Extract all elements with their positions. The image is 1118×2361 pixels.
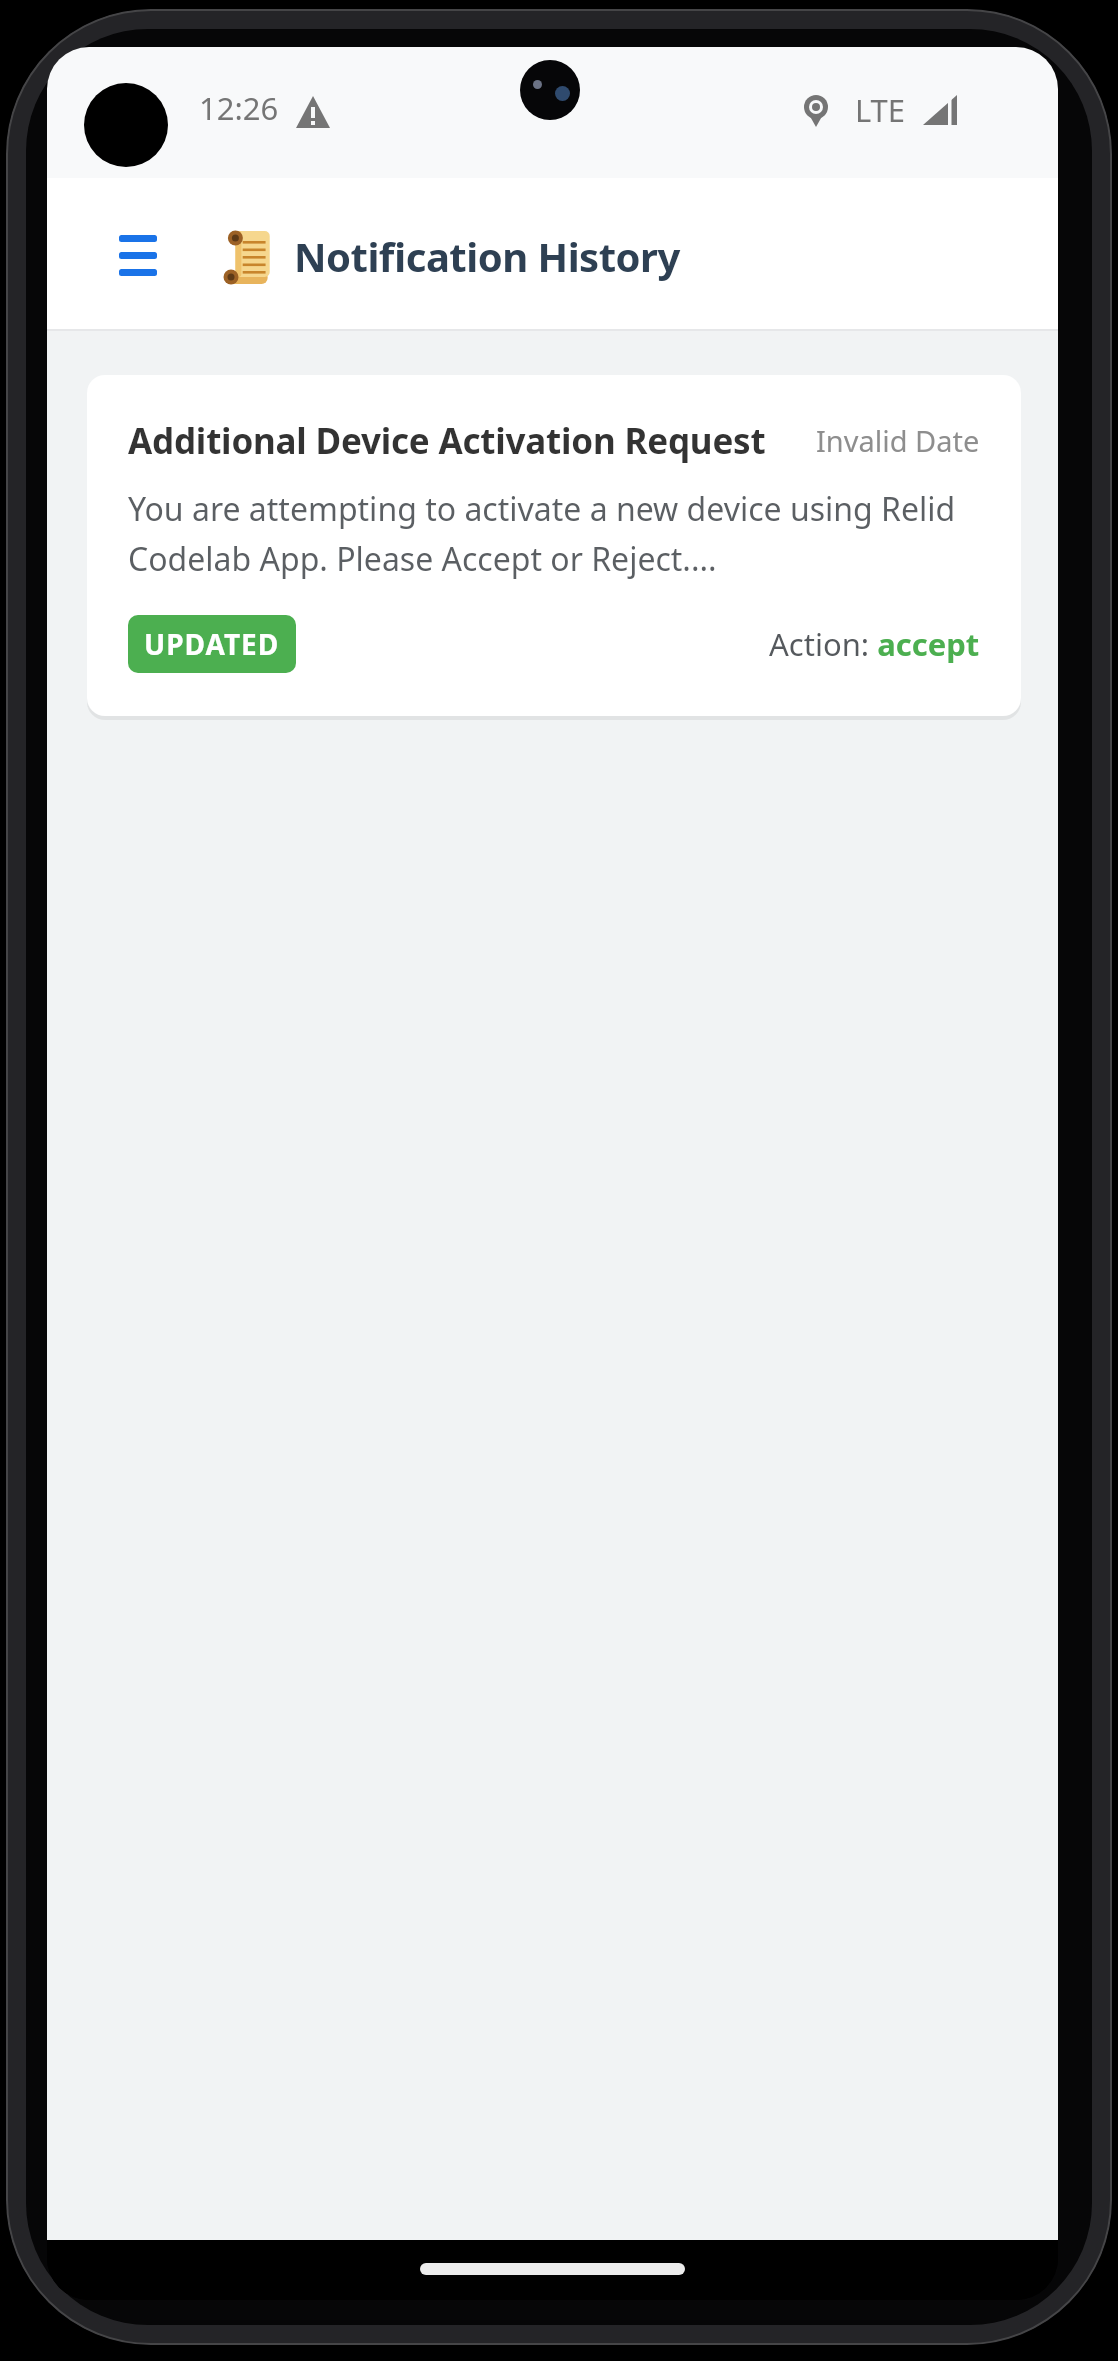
- button[interactable]: Additional Device Activation Request: [87, 375, 1021, 716]
- button[interactable]: UPDATED: [128, 615, 296, 673]
- staticText: UPDATED: [144, 625, 280, 663]
- staticText: Action: accept: [769, 623, 980, 665]
- staticText: 12:26: [199, 87, 279, 129]
- staticText: Notification History: [294, 229, 680, 283]
- staticText: Invalid Date: [816, 421, 980, 460]
- staticText: You are attempting to activate a new dev…: [128, 487, 956, 581]
- staticText: Additional Device Activation Request: [128, 417, 816, 465]
- staticText: LTE: [855, 89, 906, 131]
- button[interactable]: [107, 221, 169, 289]
